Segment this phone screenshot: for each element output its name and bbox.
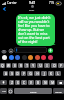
button[interactable]: It's ok, we just didn't call so you woul… [16, 14, 55, 46]
button[interactable]: App 1 [9, 55, 14, 60]
button[interactable]: App 6 [41, 55, 46, 60]
button[interactable]: App 3 [22, 55, 27, 60]
staticText: W [7, 64, 10, 68]
staticText: N [44, 81, 47, 85]
staticText: A [5, 72, 7, 76]
button[interactable]: J [41, 71, 47, 76]
button[interactable]: I [44, 63, 50, 68]
staticText: R [20, 64, 22, 68]
button[interactable]: Apps [8, 48, 14, 54]
button[interactable]: W [6, 63, 11, 68]
staticText: Q [1, 64, 4, 68]
staticText: B [37, 81, 39, 85]
button[interactable]: space [14, 88, 52, 94]
staticText: I [46, 64, 48, 68]
button[interactable]: Z [9, 80, 14, 85]
button[interactable]: return [53, 88, 64, 94]
staticText: T [26, 64, 28, 68]
staticText: 123 [2, 90, 6, 93]
staticText: J [44, 72, 45, 76]
staticText: It's ok, we just didn't call so you woul… [18, 15, 53, 44]
staticText: L [57, 72, 59, 76]
button[interactable] [14, 47, 47, 53]
staticText: Zoey [29, 8, 35, 11]
button[interactable]: B [35, 80, 41, 85]
button[interactable]: P [58, 63, 64, 68]
staticText: Y [32, 64, 34, 68]
button[interactable]: F [21, 71, 26, 76]
staticText: F [23, 72, 25, 76]
button[interactable]: T [24, 63, 29, 68]
staticText: Z [11, 81, 13, 85]
button[interactable]: Emoji [8, 88, 13, 94]
staticText: C [23, 81, 25, 85]
staticText: return [55, 90, 63, 93]
button[interactable]: Y [30, 63, 36, 68]
button[interactable]: App 7 [48, 55, 53, 60]
button[interactable]: K [48, 71, 54, 76]
button[interactable]: App 5 [35, 55, 40, 60]
staticText: E [14, 64, 16, 68]
staticText: M [51, 81, 54, 85]
staticText: G [29, 72, 32, 76]
button[interactable]: X [15, 80, 20, 85]
staticText: H [36, 72, 39, 76]
button[interactable]: V [28, 80, 34, 85]
staticText: S [11, 72, 13, 76]
staticText: P [60, 64, 62, 68]
staticText: Carrier [7, 1, 17, 5]
button[interactable]: Delete [57, 80, 64, 85]
button[interactable]: 123 [0, 88, 7, 94]
staticText: K [50, 72, 52, 76]
button[interactable]: App 0 [2, 55, 7, 60]
button[interactable]: N [42, 80, 48, 85]
button[interactable]: G [27, 71, 33, 76]
staticText: U [39, 64, 42, 68]
button[interactable]: D [15, 71, 20, 76]
button[interactable]: L [55, 71, 61, 76]
staticText: space [30, 90, 37, 93]
button[interactable]: M [49, 80, 55, 85]
staticText: 9:41 [29, 1, 36, 5]
staticText: V [30, 81, 32, 85]
button[interactable]: Q [0, 63, 5, 68]
button[interactable]: E [12, 63, 17, 68]
button[interactable]: C [21, 80, 27, 85]
staticText: 71% [49, 1, 55, 5]
button[interactable]: Camera [1, 48, 7, 54]
button[interactable]: H [34, 71, 40, 76]
staticText: D [16, 72, 19, 76]
button[interactable]: Send [48, 48, 53, 53]
button[interactable]: O [51, 63, 57, 68]
button[interactable]: U [37, 63, 43, 68]
button[interactable]: R [18, 63, 23, 68]
button[interactable]: Back [1, 5, 8, 12]
staticText: X [17, 81, 19, 85]
button[interactable]: Shift [0, 80, 7, 85]
button[interactable]: App 2 [15, 55, 20, 60]
button[interactable]: A [3, 71, 8, 76]
staticText: O [53, 64, 56, 68]
button[interactable]: App 4 [28, 55, 33, 60]
button[interactable]: S [9, 71, 14, 76]
